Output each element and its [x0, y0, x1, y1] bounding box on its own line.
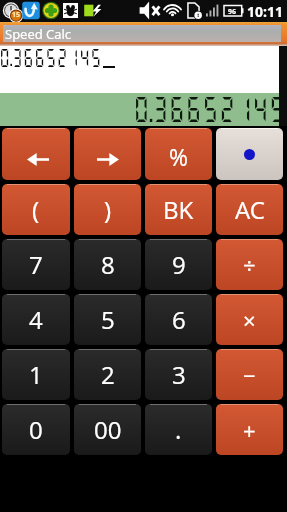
staticText: 4: [29, 303, 43, 336]
button[interactable]: ×: [216, 294, 283, 345]
staticText: 0.36652145: [0, 46, 102, 68]
button[interactable]: +: [216, 404, 283, 455]
staticText: 6: [172, 303, 186, 336]
staticText: 15: [12, 10, 20, 20]
staticText: 1: [29, 358, 43, 391]
button[interactable]: 5: [74, 294, 141, 345]
button[interactable]: 7: [2, 239, 70, 290]
staticText: BK: [163, 193, 194, 226]
button[interactable]: (: [2, 184, 70, 235]
staticText: 2: [101, 358, 115, 391]
button[interactable]: ): [74, 184, 141, 235]
staticText: 3: [172, 358, 186, 391]
button[interactable]: 6: [145, 294, 212, 345]
button[interactable]: ÷: [216, 239, 283, 290]
staticText: 5: [101, 303, 115, 336]
staticText: AC: [235, 193, 265, 226]
button[interactable]: 4: [2, 294, 70, 345]
button[interactable]: −: [216, 349, 283, 400]
staticText: −: [243, 360, 256, 390]
button[interactable]: 0: [2, 404, 70, 455]
staticText: Speed Calc: [5, 25, 71, 42]
button[interactable]: 8: [74, 239, 141, 290]
staticText: (: [32, 193, 40, 226]
button[interactable]: 3: [145, 349, 212, 400]
button[interactable]: 9: [145, 239, 212, 290]
button[interactable]: %: [145, 128, 212, 180]
staticText: ×: [243, 305, 256, 335]
button[interactable]: Move cursor right: [74, 128, 141, 180]
staticText: ): [104, 193, 112, 226]
button[interactable]: 00: [74, 404, 141, 455]
button[interactable]: AC: [216, 184, 283, 235]
staticText: 8: [101, 248, 115, 281]
staticText: 0.36652145: [133, 93, 286, 124]
staticText: 10:11: [247, 2, 283, 21]
staticText: 9: [172, 248, 186, 281]
staticText: .: [175, 413, 182, 446]
staticText: 00: [94, 413, 122, 446]
staticText: %: [169, 141, 188, 172]
button[interactable]: Move cursor left: [2, 128, 70, 180]
staticText: ÷: [243, 250, 256, 280]
button[interactable]: 2: [74, 349, 141, 400]
button[interactable]: .: [145, 404, 212, 455]
staticText: 7: [29, 248, 43, 281]
staticText: 96: [228, 7, 236, 17]
staticText: +: [243, 415, 256, 445]
button[interactable]: BK: [145, 184, 212, 235]
button[interactable]: 1: [2, 349, 70, 400]
staticText: 0: [29, 413, 43, 446]
button[interactable]: Memory: [216, 128, 283, 180]
